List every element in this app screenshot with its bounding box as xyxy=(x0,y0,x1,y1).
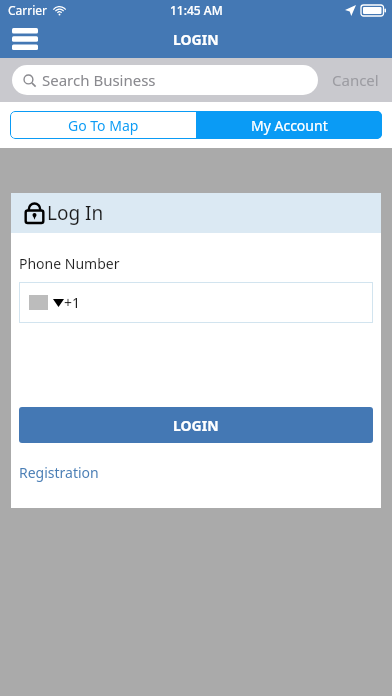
staticText: Search Business xyxy=(42,70,156,90)
staticText: Phone Number xyxy=(19,254,120,273)
staticText: +1 xyxy=(64,293,81,312)
staticText: LOGIN xyxy=(173,416,219,435)
staticText: LOGIN xyxy=(173,30,219,49)
button[interactable]: Registration xyxy=(19,463,99,482)
button[interactable]: Open navigation menu xyxy=(6,22,44,56)
button[interactable]: LOGIN xyxy=(19,407,373,443)
button[interactable]: Search Business xyxy=(12,65,318,95)
staticText: Registration xyxy=(19,463,99,482)
button[interactable]: +1 xyxy=(19,282,373,323)
button[interactable]: My Account xyxy=(196,111,382,139)
staticText: Cancel xyxy=(332,70,379,90)
button[interactable]: Cancel xyxy=(318,58,392,102)
staticText: Go To Map xyxy=(68,116,139,135)
staticText: Log In xyxy=(47,200,104,226)
staticText: Carrier xyxy=(8,2,48,18)
staticText: My Account xyxy=(251,116,328,135)
button[interactable]: Go To Map xyxy=(10,111,196,139)
staticText: 11:45 AM xyxy=(170,2,223,18)
